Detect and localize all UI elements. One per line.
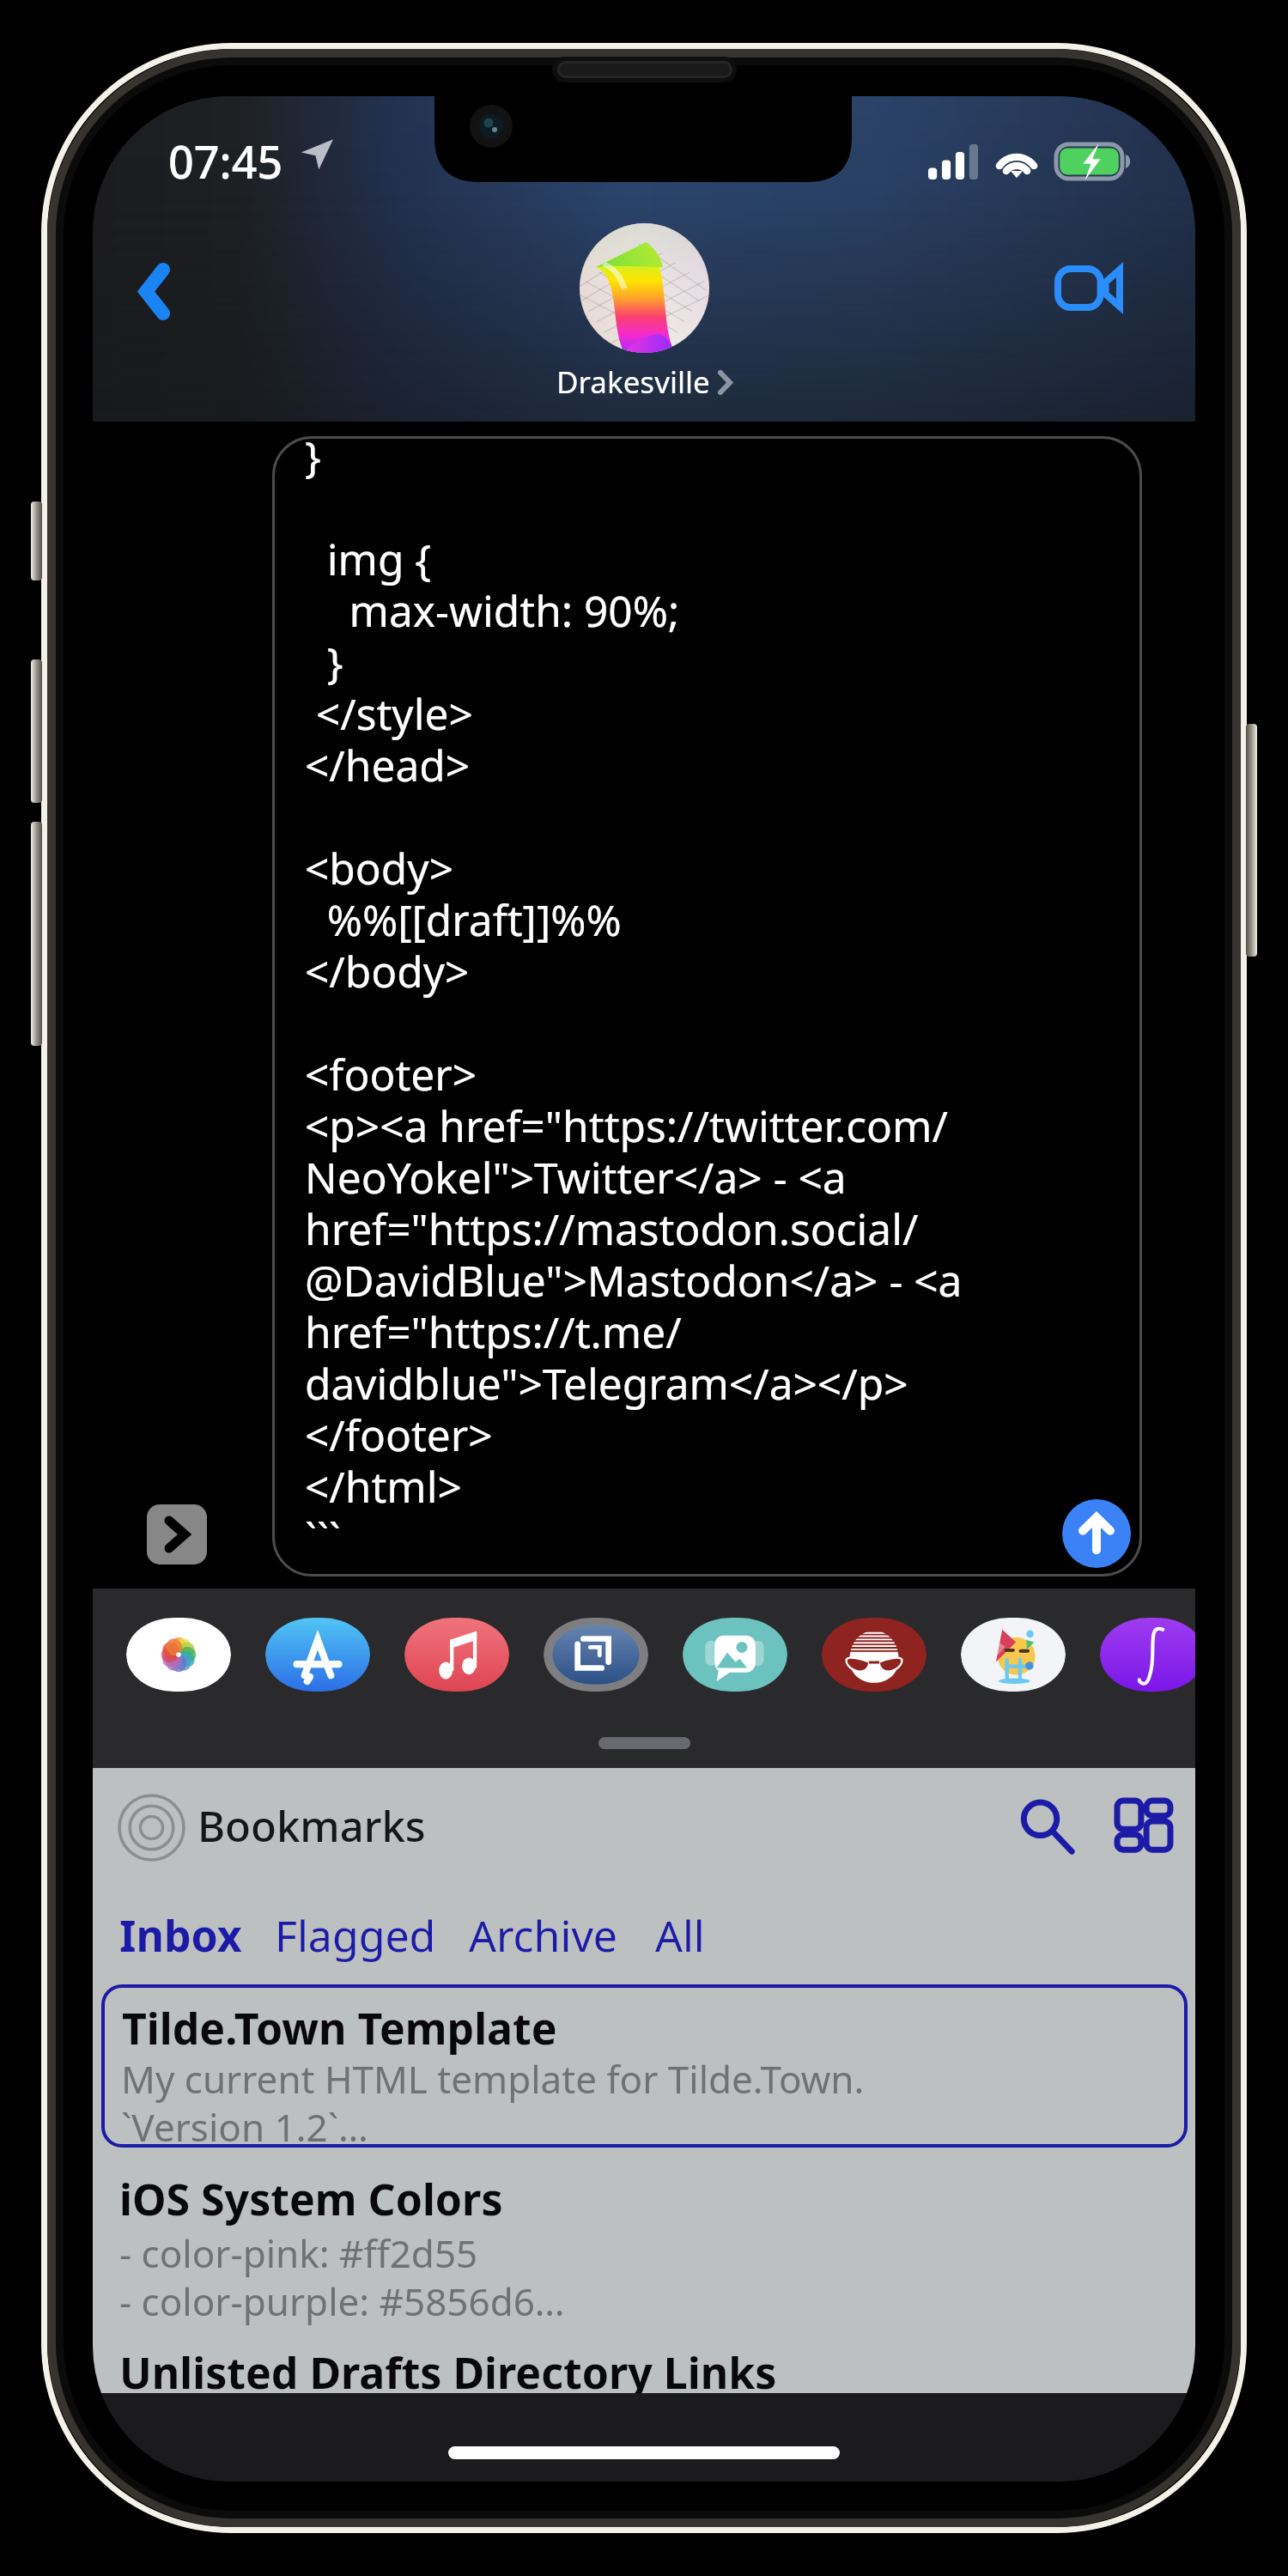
staticText: iOS System Colors: [119, 2170, 503, 2228]
button[interactable]: App 5: [683, 1618, 787, 1692]
button[interactable]: App 3: [404, 1618, 509, 1692]
staticText: All: [655, 1906, 705, 1965]
button[interactable]: App 6: [822, 1618, 927, 1692]
staticText: My current HTML template for Tilde.Town.…: [121, 2053, 865, 2153]
button[interactable]: Archive: [469, 1906, 617, 1965]
button[interactable]: App 7: [961, 1618, 1066, 1692]
button[interactable]: App icon: [108, 1784, 194, 1870]
button[interactable]: All: [655, 1906, 705, 1965]
button[interactable]: FaceTime video call: [1037, 240, 1140, 335]
staticText: Unlisted Drafts Directory Links: [119, 2343, 777, 2402]
staticText: 07:45: [168, 131, 283, 191]
button[interactable]: Expand: [147, 1504, 207, 1564]
button[interactable]: App 4: [544, 1618, 648, 1692]
button[interactable]: [101, 2335, 1188, 2393]
button[interactable]: [101, 1984, 1188, 2148]
staticText: - color-pink: #ff2d55 - color-purple: #5…: [119, 2227, 565, 2327]
button[interactable]: Inbox: [119, 1906, 242, 1965]
staticText: Inbox: [119, 1906, 242, 1965]
button[interactable]: App 1: [126, 1618, 231, 1692]
button[interactable]: Grid view: [1103, 1785, 1185, 1868]
staticText: Archive: [469, 1906, 617, 1965]
button[interactable]: App 2: [265, 1618, 370, 1692]
button[interactable]: [101, 2165, 1188, 2332]
staticText: Flagged: [275, 1906, 436, 1965]
staticText: } img { max-width: 90%; } </style> </hea…: [305, 432, 1195, 1565]
button[interactable]: Drakesville: [487, 216, 801, 405]
button[interactable]: Back: [106, 243, 203, 339]
button[interactable]: Search: [1005, 1785, 1088, 1868]
button[interactable]: App 8: [1100, 1618, 1195, 1692]
button[interactable]: Send: [1062, 1499, 1131, 1568]
staticText: Bookmarks: [197, 1797, 426, 1855]
button[interactable]: Flagged: [275, 1906, 436, 1965]
staticText: Drakesville: [556, 361, 710, 403]
staticText: Tilde.Town Template: [122, 1999, 557, 2057]
